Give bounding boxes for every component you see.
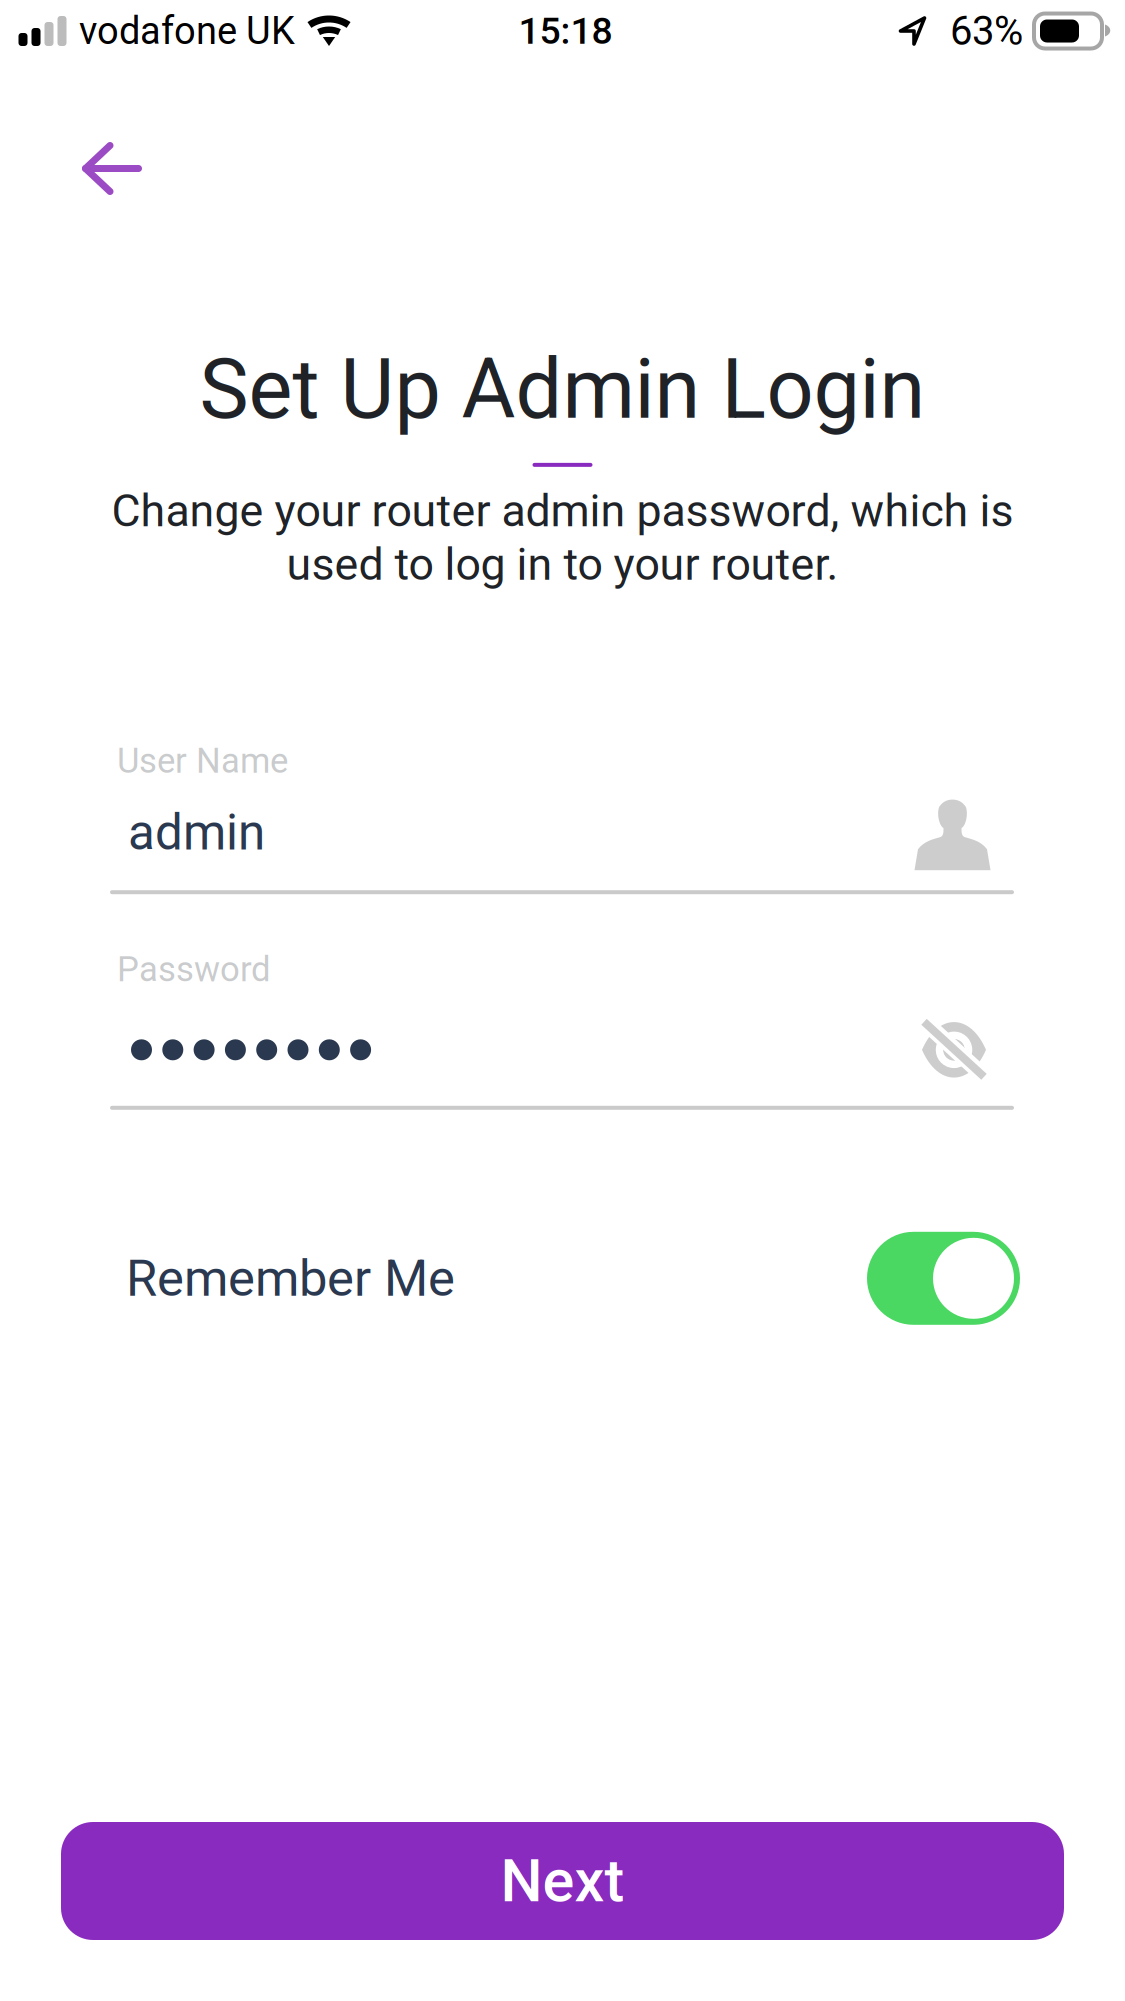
staticText: Password [117,949,271,990]
button[interactable]: Remember Me [0,1110,1125,1349]
staticText: 15:18 [518,9,612,53]
staticText: admin [128,804,265,862]
staticText: 63% [950,8,1023,54]
button[interactable]: Show password [921,1021,1014,1079]
button[interactable]: Next [61,1822,1064,1940]
staticText: User Name [117,741,288,781]
staticText: vodafone UK [79,9,295,53]
staticText: Change your router admin password, which… [111,485,1013,537]
staticText: Set Up Admin Login [199,341,925,438]
staticText: Remember Me [126,1249,455,1308]
staticText: used to log in to your router. [286,538,838,590]
staticText: Next [500,1846,624,1916]
button[interactable]: Back [0,56,202,219]
